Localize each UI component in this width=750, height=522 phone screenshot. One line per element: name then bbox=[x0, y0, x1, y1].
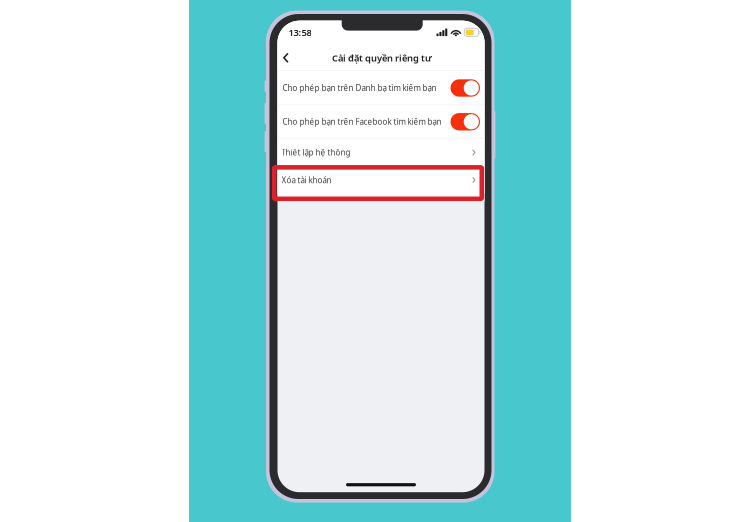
button[interactable]: Cho phép bạn trên Facebook tìm kiếm bạn bbox=[277, 105, 484, 138]
button[interactable]: Xóa tài khoản bbox=[277, 166, 484, 194]
staticText: Cài đặt quyền riêng tư bbox=[332, 52, 432, 64]
button[interactable]: Thiết lập hệ thống bbox=[277, 138, 484, 166]
staticText: Cho phép bạn trên Facebook tìm kiếm bạn bbox=[282, 116, 441, 127]
staticText: Cho phép bạn trên Danh bạ tìm kiếm bạn bbox=[282, 83, 436, 93]
staticText: 13:58 bbox=[288, 26, 311, 38]
button[interactable]: Back bbox=[278, 48, 294, 68]
staticText: Thiết lập hệ thống bbox=[281, 147, 350, 158]
button[interactable]: Cho phép bạn trên Danh bạ tìm kiếm bạn bbox=[277, 71, 484, 105]
staticText: Xóa tài khoản bbox=[281, 175, 331, 185]
